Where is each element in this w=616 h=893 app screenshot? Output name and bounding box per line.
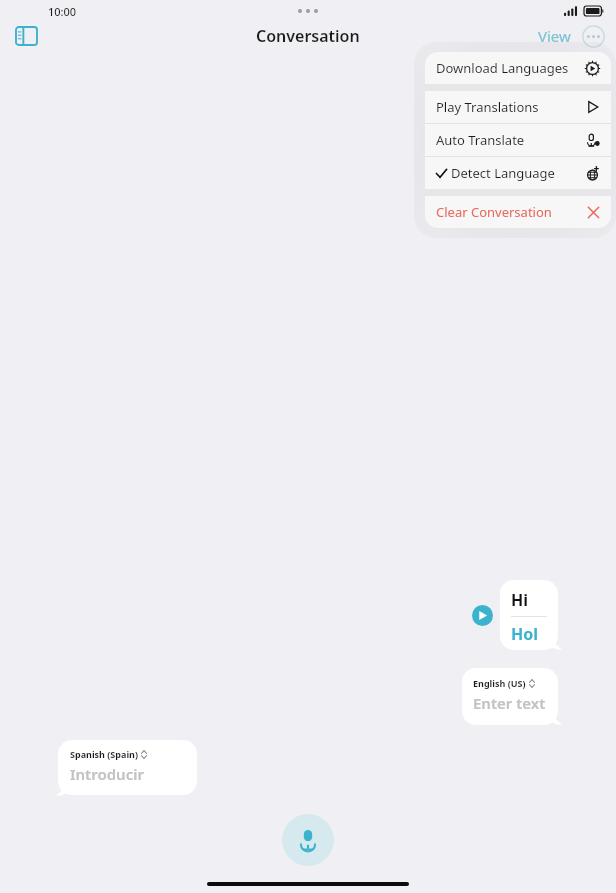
staticText: Conversation [256,25,360,47]
staticText: Auto Translate [436,131,525,149]
staticText: Play Translations [436,98,539,116]
staticText: Introducir texto [70,764,185,787]
staticText: Enter text [473,693,546,713]
staticText: 10:00 [48,4,77,19]
staticText: Clear Conversation [436,203,552,221]
staticText: View [538,26,571,46]
button[interactable]: Detect Language [425,157,611,189]
button[interactable]: More options [580,23,606,49]
button[interactable]: Clear Conversation [425,196,611,228]
button[interactable]: Download Languages [425,52,611,84]
button[interactable]: Play Translations [425,91,611,123]
staticText: Spanish (Spain) [70,748,138,760]
button[interactable]: English (US) [462,668,558,725]
staticText: Hi [511,589,529,611]
button[interactable]: Record voice [282,814,334,866]
button[interactable]: View [532,19,577,53]
staticText: English (US) [473,677,526,689]
button[interactable]: Play translation [472,605,493,626]
staticText: Hola [511,623,547,641]
button[interactable]: Hi [500,580,558,650]
staticText: Download Languages [436,59,569,77]
button[interactable]: Spanish (Spain) [58,740,197,795]
staticText: Detect Language [451,164,555,182]
button[interactable]: Auto Translate [425,124,611,156]
button[interactable]: Toggle sidebar [10,20,42,52]
